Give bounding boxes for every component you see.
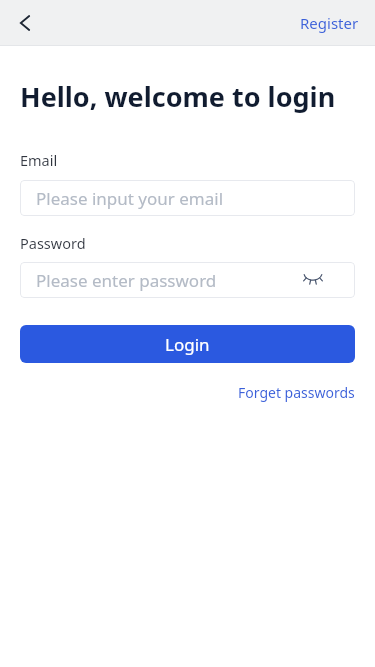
button[interactable]: Forget passwords: [238, 383, 355, 402]
staticText: Password: [20, 233, 86, 253]
staticText: Login: [165, 333, 210, 356]
staticText: Hello, welcome to login: [20, 78, 336, 115]
button[interactable]: Register: [300, 13, 359, 33]
staticText: Email: [20, 150, 58, 170]
staticText: Please enter password: [36, 269, 217, 292]
staticText: Forget passwords: [238, 383, 355, 402]
button[interactable]: [10, 8, 40, 38]
button[interactable]: Login: [20, 325, 355, 363]
staticText: Please input your email: [36, 187, 224, 210]
button[interactable]: Please enter password: [20, 262, 355, 298]
button[interactable]: Please input your email: [20, 180, 355, 216]
button[interactable]: [301, 268, 325, 292]
staticText: Register: [300, 13, 359, 33]
